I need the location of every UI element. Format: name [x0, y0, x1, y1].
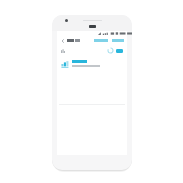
button[interactable]: Refresh	[107, 47, 114, 54]
button[interactable]: Toggle	[115, 48, 124, 54]
button[interactable]	[57, 56, 127, 71]
button[interactable]: Back	[59, 37, 66, 44]
button[interactable]: Filter	[60, 48, 66, 54]
button[interactable]: Disconnect	[93, 37, 109, 44]
button[interactable]: Upgrade	[111, 37, 125, 44]
